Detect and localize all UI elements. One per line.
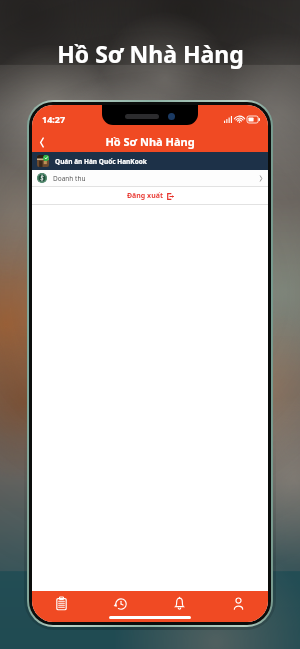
- staticText: Đăng xuất: [127, 191, 163, 201]
- button[interactable]: Orders: [32, 591, 91, 615]
- button[interactable]: Profile: [209, 591, 268, 615]
- button[interactable]: Back: [32, 132, 52, 152]
- staticText: 14:27: [42, 113, 66, 125]
- staticText: Hồ Sơ Nhà Hàng: [105, 134, 195, 149]
- button[interactable]: History: [91, 591, 150, 615]
- button[interactable]: Đăng xuất: [32, 187, 268, 204]
- button[interactable]: Quán ăn Hàn Quốc HanKook: [32, 152, 268, 170]
- staticText: Hồ Sơ Nhà Hàng: [57, 38, 244, 69]
- staticText: Doanh thu: [53, 174, 86, 183]
- button[interactable]: Doanh thu: [32, 170, 268, 186]
- button[interactable]: Notifications: [150, 591, 209, 615]
- staticText: Quán ăn Hàn Quốc HanKook: [55, 157, 147, 166]
